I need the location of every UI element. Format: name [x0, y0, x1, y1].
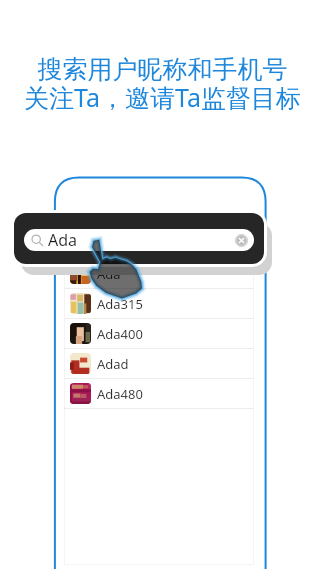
- button[interactable]: Ada: [14, 213, 264, 264]
- button[interactable]: Ada400: [64, 319, 254, 349]
- staticText: 搜索用户昵称和手机号 关注Ta，邀请Ta监督目标: [24, 54, 301, 115]
- button[interactable]: Ada: [64, 259, 254, 289]
- staticText: Ada480: [97, 385, 143, 403]
- button[interactable]: Clear text: [235, 234, 248, 247]
- staticText: Ada: [97, 265, 121, 283]
- button[interactable]: Ada315: [64, 289, 254, 319]
- staticText: Ada315: [97, 295, 143, 313]
- button[interactable]: Ada480: [64, 379, 254, 409]
- staticText: Ada: [48, 229, 78, 251]
- button[interactable]: Adad: [64, 349, 254, 379]
- staticText: Adad: [97, 355, 129, 373]
- staticText: Ada400: [97, 325, 143, 343]
